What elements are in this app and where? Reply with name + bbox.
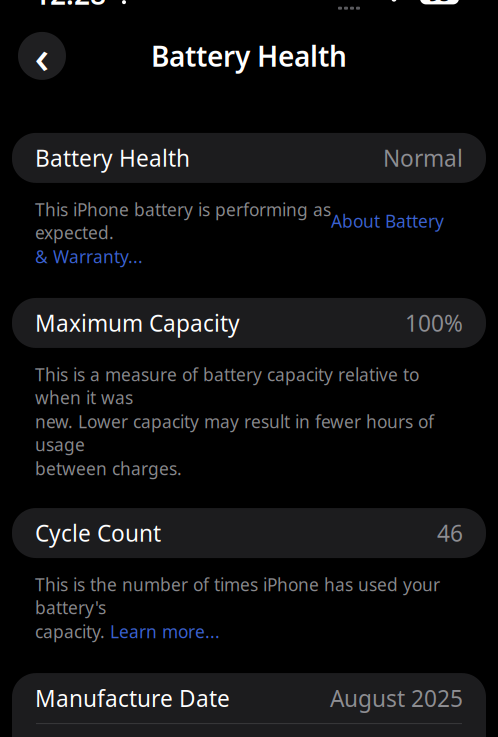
staticText: Cycle Count	[35, 518, 161, 548]
staticText: 95	[428, 0, 450, 6]
staticText: This is the number of times iPhone has u…	[35, 573, 440, 619]
staticText: Battery Health	[35, 143, 190, 173]
staticText: capacity.	[35, 620, 110, 643]
button[interactable]: Back	[18, 32, 66, 80]
staticText: 46	[437, 518, 463, 548]
staticText: This is a measure of battery capacity re…	[35, 363, 419, 409]
staticText: 12:28	[34, 0, 106, 13]
staticText: About Battery	[331, 209, 444, 232]
staticText: Normal	[383, 143, 463, 173]
staticText: Battery Health	[151, 37, 347, 74]
staticText: Learn more...	[110, 620, 220, 643]
button[interactable]: Maximum Capacity	[12, 298, 486, 348]
staticText: Maximum Capacity	[35, 308, 240, 338]
staticText: ‹	[34, 26, 49, 86]
staticText: Manufacture Date	[35, 683, 230, 713]
staticText: new. Lower capacity may result in fewer …	[35, 410, 434, 456]
staticText: between charges.	[35, 457, 182, 480]
staticText: This iPhone battery is performing as exp…	[35, 198, 331, 244]
staticText: & Warranty...	[35, 245, 143, 268]
button[interactable]: Battery Health	[12, 133, 486, 183]
staticText: August 2025	[330, 683, 463, 713]
staticText: 100%	[405, 308, 463, 338]
button[interactable]: Manufacture Date	[12, 673, 486, 723]
button[interactable]: Cycle Count	[12, 508, 486, 558]
